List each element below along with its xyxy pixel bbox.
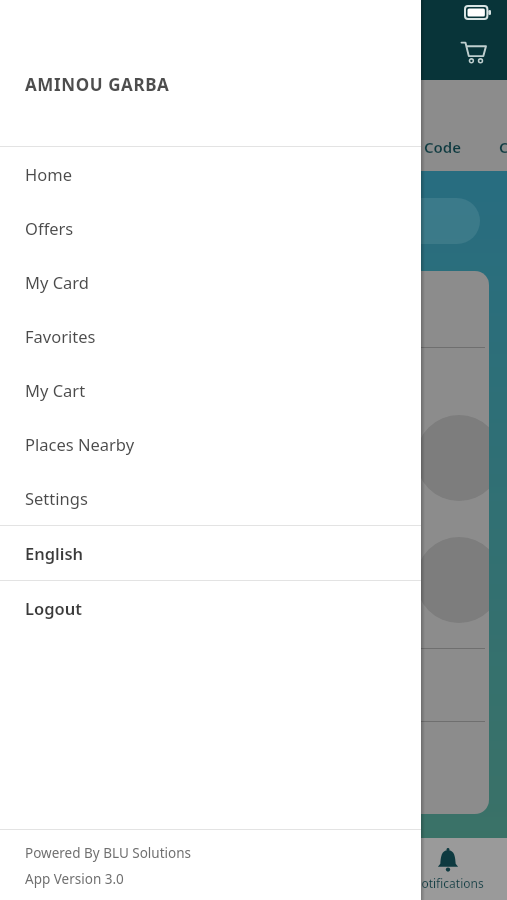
button[interactable]: Favorites: [0, 309, 421, 363]
staticText: Settings: [25, 487, 88, 509]
button[interactable]: Cart: [453, 32, 495, 74]
staticText: Offers: [25, 217, 74, 239]
button[interactable]: Settings: [0, 471, 421, 525]
button[interactable]: AMINOU GARBA: [0, 0, 421, 146]
button[interactable]: Notifications: [398, 838, 498, 900]
staticText: AMINOU GARBA: [25, 73, 170, 96]
button[interactable]: Home: [0, 147, 421, 201]
staticText: Powered By BLU Solutions: [25, 844, 192, 862]
staticText: My Cart: [25, 379, 86, 401]
staticText: English: [25, 542, 84, 564]
staticText: C: [499, 137, 507, 157]
button[interactable]: Offers: [0, 201, 421, 255]
staticText: My Card: [25, 271, 89, 293]
staticText: Home: [25, 163, 72, 185]
staticText: App Version 3.0: [25, 870, 124, 888]
staticText: Favorites: [25, 325, 96, 347]
button[interactable]: My Card: [0, 255, 421, 309]
staticText: Places Nearby: [25, 433, 135, 455]
button[interactable]: Logout: [0, 581, 421, 635]
button[interactable]: English: [0, 526, 421, 580]
button[interactable]: Places Nearby: [0, 417, 421, 471]
button[interactable]: [120, 198, 480, 244]
staticText: Logout: [25, 597, 82, 619]
staticText: Notifications: [412, 875, 484, 891]
button[interactable]: My Cart: [0, 363, 421, 417]
staticText: Code: [424, 137, 461, 157]
